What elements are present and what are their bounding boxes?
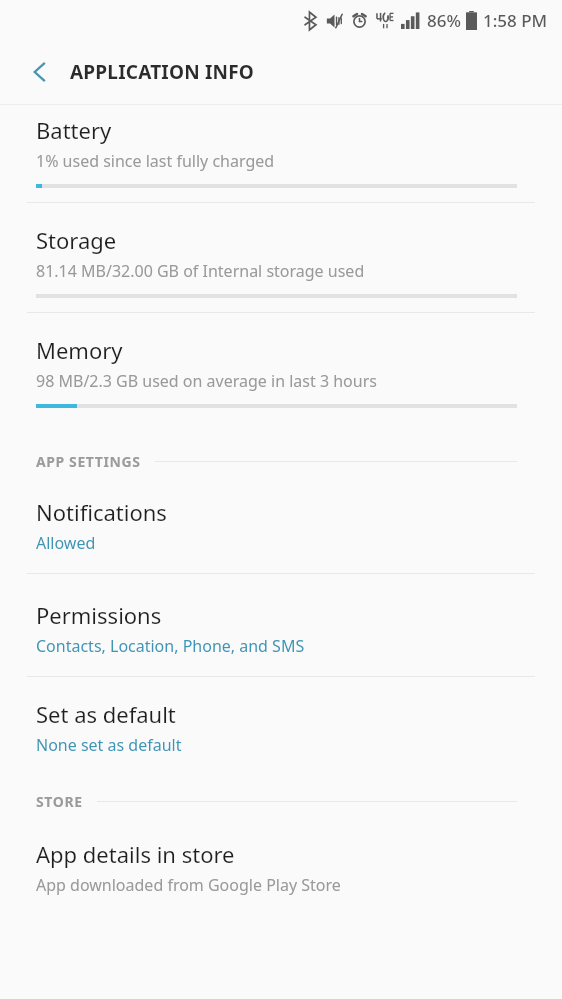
staticText: STORE xyxy=(36,792,83,811)
staticText: APP SETTINGS xyxy=(36,452,141,471)
button[interactable]: Set as default xyxy=(0,699,562,756)
staticText: 81.14 MB/32.00 GB of Internal storage us… xyxy=(36,260,365,282)
staticText: Notifications xyxy=(36,497,167,527)
staticText: APPLICATION INFO xyxy=(70,59,255,85)
button[interactable]: Battery xyxy=(0,115,562,188)
staticText: App details in store xyxy=(36,839,235,869)
staticText: Storage xyxy=(36,225,117,255)
staticText: 1% used since last fully charged xyxy=(36,150,275,172)
staticText: Contacts, Location, Phone, and SMS xyxy=(36,635,305,657)
button[interactable]: Permissions xyxy=(0,600,562,657)
button[interactable]: Storage xyxy=(0,225,562,298)
staticText: Set as default xyxy=(36,699,176,729)
staticText: None set as default xyxy=(36,734,182,756)
button[interactable]: Notifications xyxy=(0,497,562,554)
button[interactable]: App details in store xyxy=(0,839,562,896)
button[interactable]: Back xyxy=(16,48,64,96)
staticText: 1:58 PM xyxy=(483,9,548,32)
staticText: Memory xyxy=(36,335,123,365)
button[interactable]: Memory xyxy=(0,335,562,408)
staticText: Permissions xyxy=(36,600,162,630)
staticText: 86% xyxy=(427,9,461,32)
staticText: Allowed xyxy=(36,532,96,554)
staticText: Battery xyxy=(36,115,112,145)
staticText: App downloaded from Google Play Store xyxy=(36,874,341,896)
staticText: 98 MB/2.3 GB used on average in last 3 h… xyxy=(36,370,377,392)
